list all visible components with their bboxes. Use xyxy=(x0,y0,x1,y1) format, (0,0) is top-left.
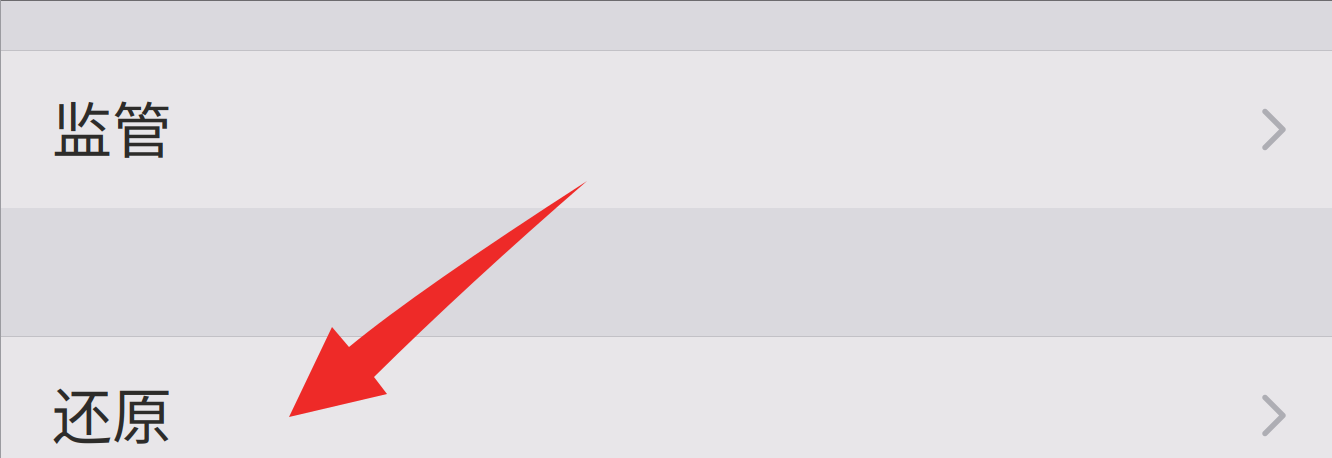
button[interactable]: 还原 xyxy=(0,337,1332,458)
button[interactable]: 监管 xyxy=(0,51,1332,208)
staticText: 监管 xyxy=(52,83,172,170)
staticText: 还原 xyxy=(52,369,172,456)
